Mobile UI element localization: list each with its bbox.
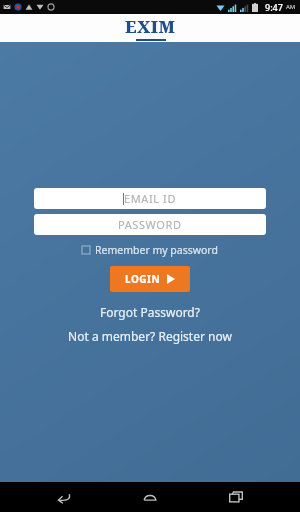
button[interactable]: Home: [128, 482, 172, 512]
staticText: Forgot Password?: [100, 304, 200, 320]
staticText: PASSWORD: [118, 217, 182, 232]
button[interactable]: Back: [42, 482, 86, 512]
button[interactable]: Remember my password: [78, 241, 222, 259]
staticText: AM: [286, 3, 296, 11]
button[interactable]: Not a member? Register now: [60, 326, 240, 346]
button[interactable]: PASSWORD: [34, 214, 266, 235]
staticText: Remember my password: [95, 243, 218, 257]
staticText: EMAIL ID: [124, 191, 177, 206]
staticText: LOGIN: [125, 272, 161, 286]
button[interactable]: Forgot Password?: [92, 302, 208, 322]
staticText: 9:47: [265, 1, 283, 13]
button[interactable]: EMAIL ID: [34, 188, 266, 209]
button[interactable]: Recent apps: [214, 482, 258, 512]
button[interactable]: LOGIN: [110, 266, 190, 292]
staticText: Not a member? Register now: [68, 328, 232, 344]
staticText: EXIM: [125, 15, 176, 38]
